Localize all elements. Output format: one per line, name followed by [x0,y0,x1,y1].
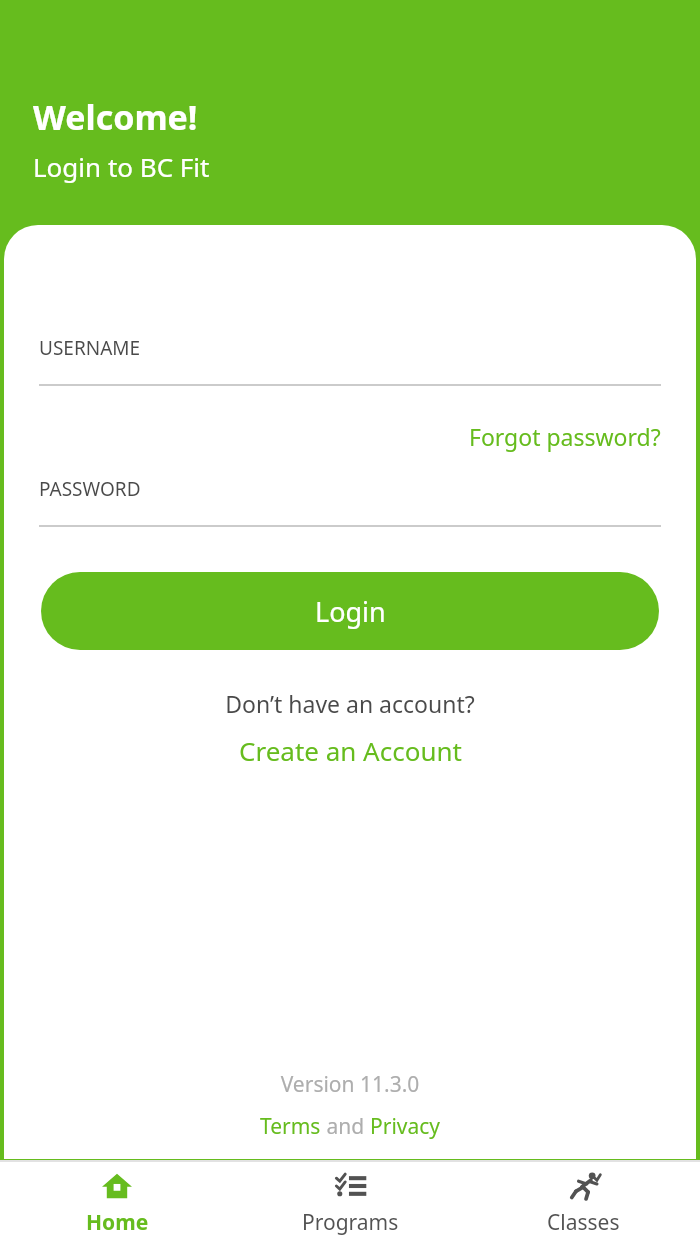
button[interactable]: Login [41,572,659,650]
staticText: Privacy [370,1112,441,1141]
staticText: Welcome! [33,94,198,140]
staticText: Login [315,593,386,630]
staticText: Create an Account [239,733,462,768]
staticText: Don’t have an account? [4,688,696,719]
button[interactable]: Home [0,1162,234,1244]
button[interactable]: Privacy [370,1112,441,1141]
staticText: Login to BC Fit [33,149,210,184]
staticText: USERNAME [39,335,141,361]
staticText: Programs [302,1208,399,1237]
staticText: Home [86,1208,149,1237]
button[interactable]: Terms [260,1112,321,1141]
staticText: Forgot password? [469,421,661,452]
staticText: and [321,1112,370,1141]
button[interactable]: Classes [467,1162,700,1244]
button[interactable]: Forgot password? [469,419,661,454]
staticText: Version 11.3.0 [4,1070,696,1099]
button[interactable]: Programs [234,1162,467,1244]
staticText: Terms [260,1112,321,1141]
staticText: PASSWORD [39,476,141,502]
button[interactable]: Create an Account [233,731,468,770]
staticText: Classes [547,1208,620,1237]
